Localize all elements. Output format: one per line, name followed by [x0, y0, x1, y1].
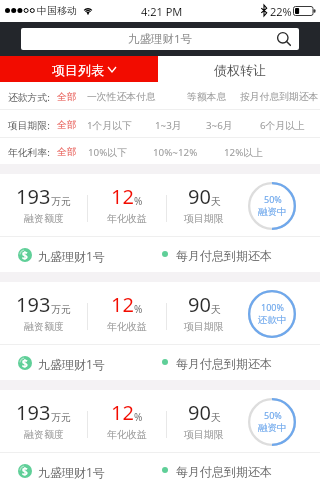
staticText: 每月付息到期还本: [176, 464, 272, 479]
staticText: 等额本息: [187, 91, 227, 103]
button[interactable]: 全部: [57, 138, 77, 164]
staticText: 项目期限: [184, 428, 224, 441]
staticText: 债权转让: [214, 62, 266, 78]
staticText: $: [22, 248, 28, 262]
button[interactable]: 债权转让: [158, 56, 320, 82]
staticText: 90: [188, 183, 211, 210]
staticText: 融资额度: [24, 428, 64, 441]
staticText: 50%: [264, 409, 282, 421]
button[interactable]: 九盛理财1号: [21, 28, 299, 50]
button[interactable]: 一次性还本付息: [87, 82, 156, 110]
staticText: 中国移动: [37, 4, 77, 17]
staticText: 全部: [57, 146, 77, 158]
staticText: 90: [188, 291, 211, 318]
button[interactable]: 6个月以上: [260, 110, 305, 138]
button[interactable]: 全部: [57, 110, 77, 138]
other: Search: [277, 32, 291, 46]
staticText: 22%: [270, 4, 292, 19]
staticText: 年化收益: [107, 212, 147, 225]
button[interactable]: 全部: [57, 82, 77, 110]
staticText: 1~3月: [155, 119, 182, 132]
staticText: 全部: [57, 119, 77, 131]
staticText: 12%以上: [224, 146, 263, 159]
staticText: 193: [16, 399, 51, 426]
staticText: 一次性还本付息: [87, 91, 156, 103]
staticText: 193: [16, 183, 51, 210]
button[interactable]: 按月付息到期还本: [240, 82, 319, 110]
staticText: 10%~12%: [153, 146, 198, 159]
staticText: 每月付息到期还本: [176, 356, 272, 371]
staticText: 1个月以下: [87, 119, 132, 132]
staticText: 12: [111, 183, 134, 210]
staticText: 193: [16, 291, 51, 318]
staticText: 50%: [264, 193, 282, 205]
staticText: 12: [111, 291, 134, 318]
staticText: 按月付息到期还本: [240, 91, 319, 103]
button[interactable]: 3~6月: [206, 110, 233, 138]
staticText: 12: [111, 399, 134, 426]
button[interactable]: 193: [0, 390, 320, 480]
staticText: 年化收益: [107, 320, 147, 333]
staticText: 九盛理财1号: [128, 31, 193, 47]
staticText: 6个月以上: [260, 119, 305, 132]
button[interactable]: 193: [0, 282, 320, 380]
other: Product: [18, 356, 32, 370]
staticText: 天: [211, 195, 221, 208]
staticText: 全部: [57, 91, 77, 103]
staticText: 融资中: [258, 206, 287, 218]
button[interactable]: 10%~12%: [153, 138, 198, 164]
staticText: 九盛理财1号: [38, 356, 105, 372]
button[interactable]: 等额本息: [187, 82, 227, 110]
staticText: 项目列表: [52, 62, 104, 78]
staticText: 4:21 PM: [141, 4, 183, 19]
staticText: 还款中: [258, 314, 287, 326]
staticText: 九盛理财1号: [38, 248, 105, 264]
other: Product: [18, 248, 32, 262]
staticText: 九盛理财1号: [38, 464, 105, 480]
staticText: 天: [211, 411, 221, 424]
button[interactable]: 1个月以下: [87, 110, 132, 138]
button[interactable]: 193: [0, 174, 320, 272]
other: Product: [18, 464, 32, 478]
button[interactable]: 12%以上: [224, 138, 263, 164]
staticText: 90: [188, 399, 211, 426]
staticText: 项目期限:: [8, 119, 50, 132]
staticText: 10%以下: [88, 146, 127, 159]
staticText: %: [134, 194, 143, 208]
staticText: 项目期限: [184, 212, 224, 225]
staticText: 还款方式:: [8, 91, 50, 104]
staticText: %: [134, 302, 143, 316]
staticText: 万元: [51, 303, 71, 316]
staticText: 年化利率:: [8, 146, 50, 159]
button[interactable]: 10%以下: [88, 138, 127, 164]
staticText: 年化收益: [107, 428, 147, 441]
staticText: $: [22, 464, 28, 478]
staticText: 万元: [51, 195, 71, 208]
staticText: 融资额度: [24, 320, 64, 333]
button[interactable]: 1~3月: [155, 110, 182, 138]
staticText: 融资额度: [24, 212, 64, 225]
staticText: %: [134, 410, 143, 424]
staticText: 3~6月: [206, 119, 233, 132]
staticText: $: [22, 356, 28, 370]
staticText: 融资中: [258, 422, 287, 434]
staticText: 天: [211, 303, 221, 316]
staticText: 100%: [261, 301, 284, 313]
staticText: 项目期限: [184, 320, 224, 333]
button[interactable]: 项目列表: [0, 56, 158, 82]
staticText: 万元: [51, 411, 71, 424]
staticText: 每月付息到期还本: [176, 248, 272, 263]
